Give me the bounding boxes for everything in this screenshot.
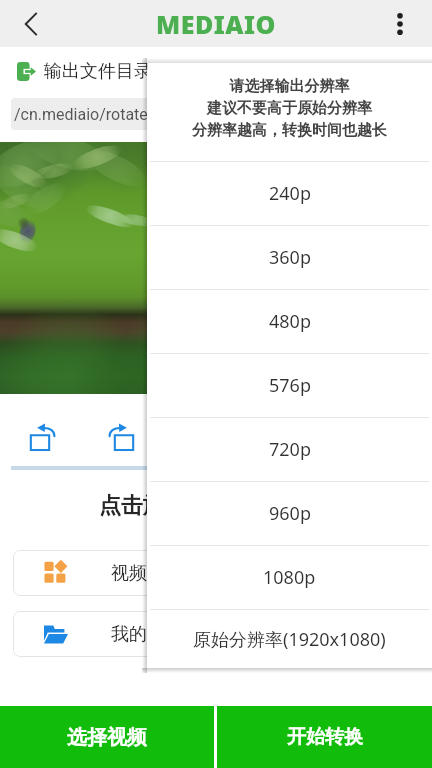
button[interactable]: 240p — [147, 162, 432, 225]
button[interactable]: 我的视频 — [13, 611, 419, 657]
button[interactable]: 1080p — [147, 546, 432, 609]
staticText: 选择视频 — [67, 725, 147, 750]
button[interactable]: Rotate left — [22, 419, 58, 455]
button[interactable]: More options — [376, 0, 423, 47]
button[interactable]: 原始分辨率(1920x1080) — [147, 610, 432, 668]
staticText: 开始转换 — [287, 725, 363, 749]
button[interactable]: 480p — [147, 290, 432, 353]
button[interactable]: 360p — [147, 226, 432, 289]
staticText: 576p — [269, 373, 311, 398]
button[interactable]: /cn.mediaio/rotatevideo — [11, 98, 423, 130]
staticText: 输出文件目录 — [44, 60, 152, 83]
button[interactable]: 960p — [147, 482, 432, 545]
staticText: 360p — [269, 245, 311, 270]
staticText: 480p — [269, 309, 311, 334]
button[interactable]: Back — [8, 1, 54, 47]
staticText: 960p — [269, 501, 311, 526]
staticText: 视频信息 — [111, 562, 183, 585]
button[interactable]: 576p — [147, 354, 432, 417]
button[interactable]: 720p — [147, 418, 432, 481]
button[interactable]: 视频信息 — [13, 550, 419, 596]
button[interactable]: Rotate right — [106, 419, 142, 455]
staticText: 请选择输出分辨率 建议不要高于原始分辨率 分辨率越高，转换时间也越长 — [192, 77, 387, 140]
staticText: 720p — [269, 437, 311, 462]
button[interactable]: 开始转换 — [217, 706, 432, 768]
button[interactable]: 选择视频 — [0, 706, 214, 768]
staticText: 240p — [269, 181, 311, 206]
staticText: 1080p — [263, 565, 316, 590]
staticText: MEDIAIO — [156, 7, 276, 41]
staticText: 点击旋转按钮旋转视频 — [0, 492, 425, 520]
staticText: 原始分辨率(1920x1080) — [193, 627, 386, 652]
staticText: /cn.mediaio/rotatevideo — [14, 105, 186, 124]
staticText: 我的视频 — [111, 623, 183, 646]
